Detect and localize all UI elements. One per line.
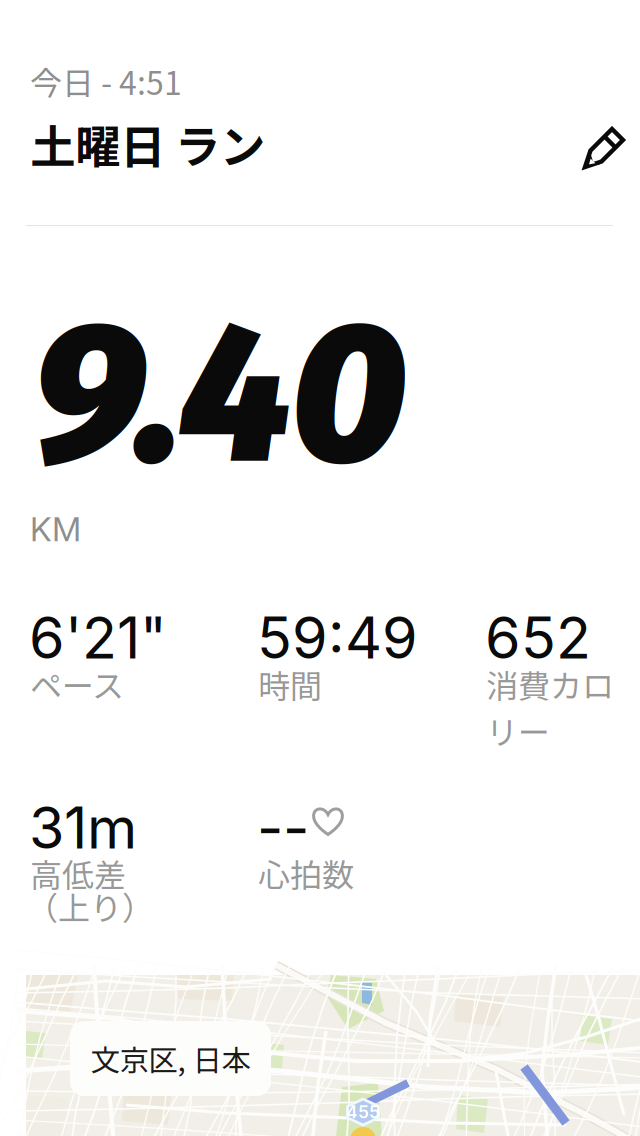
staticText: 心拍数: [258, 850, 354, 896]
staticText: 土曜日 ラン: [30, 111, 265, 177]
staticText: 652: [485, 603, 591, 672]
staticText: --: [257, 793, 309, 862]
staticText: 消費カロリー: [486, 661, 614, 754]
staticText: （上り）: [26, 883, 154, 929]
staticText: ペース: [30, 661, 124, 707]
staticText: 文京区, 日本: [90, 1037, 250, 1080]
staticText: 6'21": [29, 603, 167, 672]
staticText: KM: [30, 509, 81, 549]
staticText: 時間: [258, 661, 322, 707]
staticText: 455: [346, 1101, 380, 1122]
staticText: 今日 - 4:51: [30, 58, 182, 104]
staticText: 59:49: [257, 603, 418, 672]
button[interactable]: Edit: [582, 124, 628, 172]
staticText: 31m: [29, 793, 137, 862]
staticText: 高低差: [30, 850, 126, 896]
staticText: 9.40: [33, 277, 407, 512]
